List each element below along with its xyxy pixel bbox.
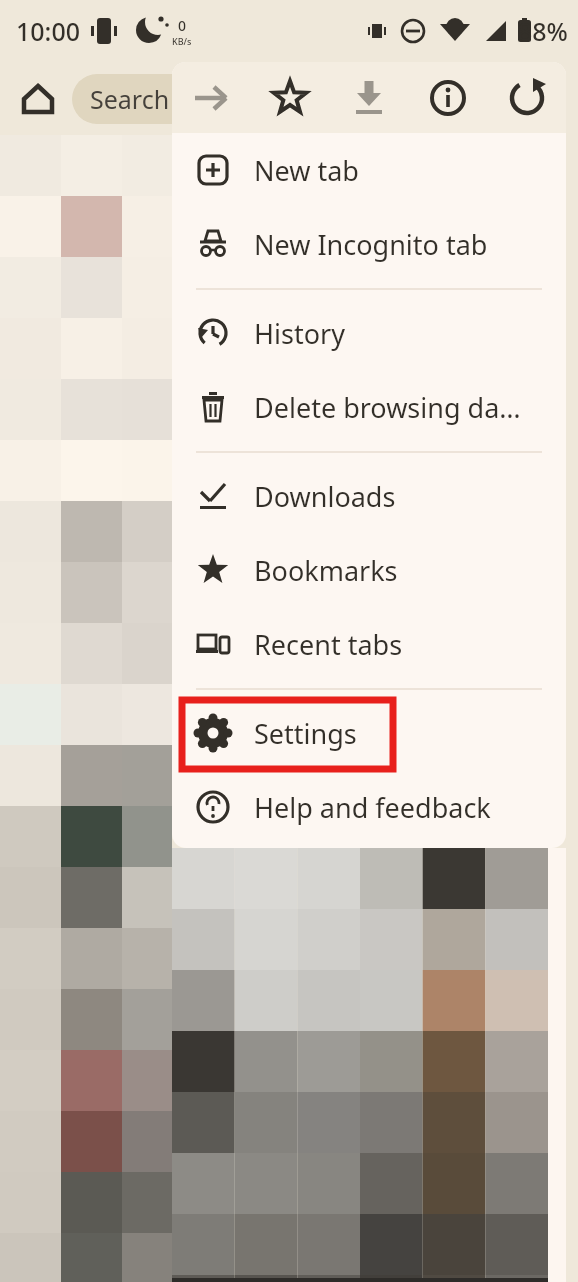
staticText: Recent tabs: [254, 626, 403, 663]
button[interactable]: Download: [329, 62, 408, 133]
button[interactable]: Delete browsing da…: [172, 370, 566, 444]
staticText: 0: [178, 16, 187, 35]
button[interactable]: Home: [14, 74, 62, 122]
button[interactable]: Reload: [487, 62, 566, 133]
button[interactable]: New Incognito tab: [172, 207, 566, 281]
staticText: History: [254, 315, 345, 352]
button[interactable]: Bookmarks: [172, 533, 566, 607]
staticText: Delete browsing da…: [254, 389, 521, 426]
button[interactable]: Page info: [408, 62, 487, 133]
staticText: New tab: [254, 152, 359, 189]
button[interactable]: Bookmark: [250, 62, 329, 133]
staticText: Downloads: [254, 478, 396, 515]
button[interactable]: Settings: [172, 696, 566, 770]
staticText: 10:00: [16, 14, 81, 48]
button[interactable]: Help and feedback: [172, 770, 566, 844]
staticText: Help and feedback: [254, 789, 491, 826]
button[interactable]: Search: [72, 74, 242, 124]
staticText: New Incognito tab: [254, 226, 488, 263]
staticText: Settings: [254, 715, 357, 752]
button[interactable]: Downloads: [172, 459, 566, 533]
staticText: KB/s: [172, 35, 192, 47]
staticText: Bookmarks: [254, 552, 398, 589]
button[interactable]: History: [172, 296, 566, 370]
button[interactable]: Recent tabs: [172, 607, 566, 681]
staticText: Search: [90, 82, 170, 116]
button[interactable]: Forward: [172, 62, 250, 133]
button[interactable]: New tab: [172, 133, 566, 207]
staticText: 88%: [518, 14, 568, 48]
